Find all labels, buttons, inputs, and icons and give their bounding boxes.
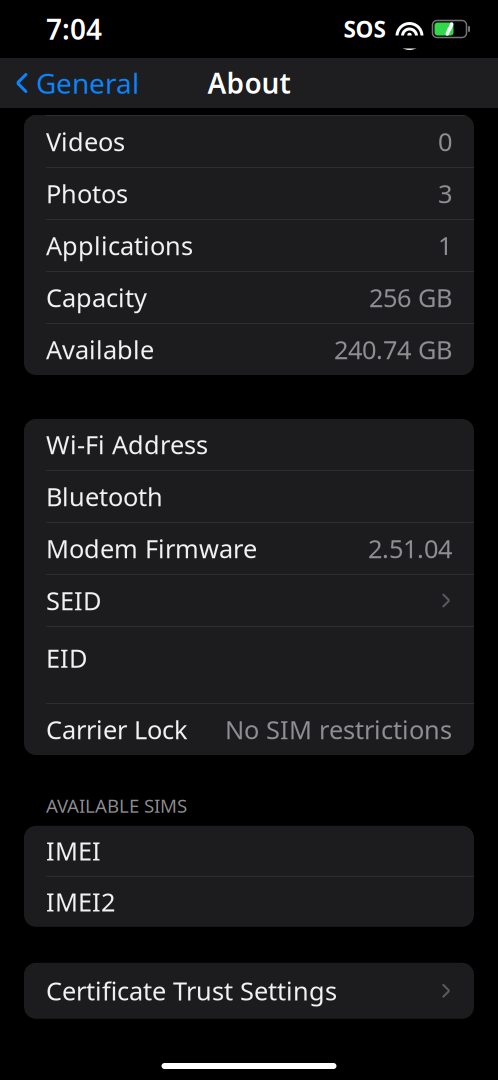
staticText: 7:04 [46, 10, 102, 48]
staticText: 0 [438, 125, 452, 158]
staticText: IMEI2 [46, 885, 115, 919]
staticText: SEID [46, 584, 101, 617]
button[interactable]: Bluetooth [24, 471, 474, 522]
staticText: Carrier Lock [46, 713, 188, 746]
staticText: No SIM restrictions [225, 713, 452, 746]
button[interactable]: EID [24, 627, 474, 703]
staticText: Modem Firmware [46, 532, 257, 565]
button[interactable]: Capacity [24, 272, 474, 323]
staticText: IMEI [46, 834, 101, 868]
button[interactable]: IMEI [24, 826, 474, 876]
staticText: SOS [343, 14, 385, 44]
staticText: 3 [438, 177, 452, 210]
staticText: 256 GB [369, 281, 452, 314]
staticText: General [36, 64, 139, 102]
staticText: 1 [438, 229, 452, 262]
button[interactable]: Applications [24, 220, 474, 271]
button[interactable]: Certificate Trust Settings [24, 963, 474, 1019]
staticText: 2.51.04 [368, 532, 452, 565]
button[interactable]: Wi-Fi Address [24, 419, 474, 470]
button[interactable]: Videos [24, 116, 474, 167]
button[interactable]: Carrier Lock [24, 704, 474, 755]
staticText: 240.74 GB [334, 333, 452, 366]
staticText: AVAILABLE SIMS [46, 793, 187, 818]
staticText: EID [46, 641, 87, 675]
staticText: Certificate Trust Settings [46, 974, 337, 1008]
staticText: Wi-Fi Address [46, 428, 208, 461]
staticText: Applications [46, 229, 193, 262]
button[interactable]: Photos [24, 168, 474, 219]
staticText: About [207, 64, 290, 102]
button[interactable]: Modem Firmware [24, 523, 474, 574]
staticText: Photos [46, 177, 128, 210]
button[interactable]: IMEI2 [24, 877, 474, 927]
staticText: Videos [46, 125, 125, 158]
staticText: Bluetooth [46, 480, 163, 513]
button[interactable]: General [0, 58, 139, 108]
staticText: Available [46, 333, 154, 366]
button[interactable]: Available [24, 324, 474, 375]
button[interactable]: SEID [24, 575, 474, 626]
staticText: Capacity [46, 281, 147, 314]
